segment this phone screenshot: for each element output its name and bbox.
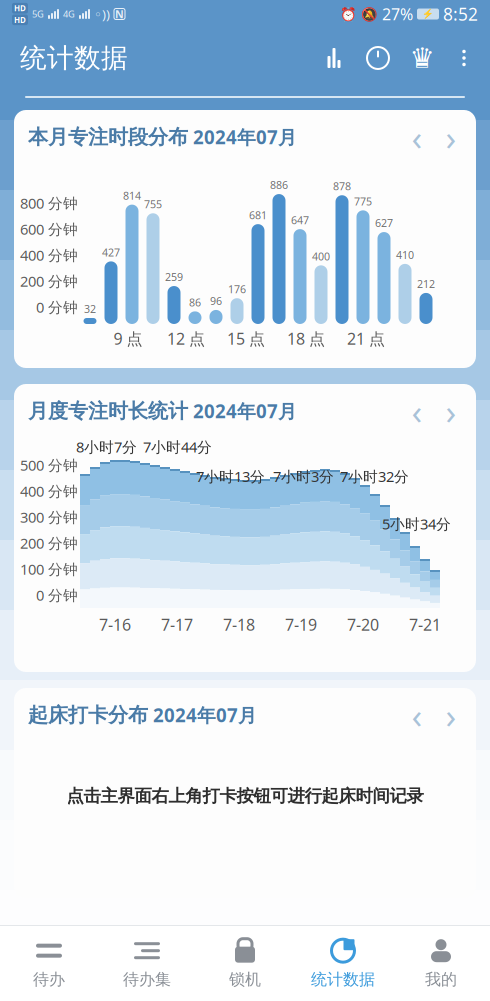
- staticText: 4G: [63, 8, 75, 20]
- staticText: 8:52: [443, 2, 478, 25]
- staticText: 5G: [32, 8, 44, 20]
- staticText: 2024年07月: [188, 399, 297, 423]
- staticText: 647: [291, 213, 309, 227]
- staticText: 600 分钟: [20, 219, 78, 239]
- staticText: 814: [123, 188, 141, 203]
- staticText: ♛: [409, 42, 434, 74]
- button[interactable]: 锁机: [196, 932, 294, 994]
- staticText: 8小时7分: [76, 437, 137, 456]
- staticText: 7小时13分: [196, 466, 265, 486]
- button[interactable]: 我的: [392, 932, 490, 994]
- staticText: HD: [14, 14, 26, 25]
- staticText: 2024年07月: [148, 703, 257, 727]
- staticText: 点击主界面右上角打卡按钮可进行起床时间记录: [66, 785, 423, 807]
- staticText: 待办集: [123, 970, 171, 989]
- button[interactable]: 统计数据: [294, 932, 392, 994]
- button[interactable]: 下一月: [434, 122, 468, 152]
- staticText: 775: [354, 194, 372, 208]
- button[interactable]: 上一月: [400, 396, 434, 426]
- staticText: ‹: [411, 114, 422, 160]
- button[interactable]: 上一月: [400, 122, 434, 152]
- staticText: 176: [228, 282, 246, 296]
- staticText: 7-20: [347, 614, 379, 635]
- staticText: 27%: [382, 3, 413, 25]
- staticText: 7小时3分: [273, 466, 334, 486]
- staticText: 2024年07月: [188, 125, 297, 149]
- button[interactable]: 待办: [0, 932, 98, 994]
- staticText: 21 点: [347, 328, 385, 349]
- staticText: ⚡: [422, 9, 434, 19]
- staticText: 86: [189, 295, 201, 309]
- staticText: 18 点: [287, 328, 325, 349]
- staticText: 9 点: [113, 328, 142, 349]
- staticText: 410: [396, 248, 414, 262]
- button[interactable]: 更多: [444, 36, 484, 80]
- button[interactable]: 时间记录: [356, 36, 400, 80]
- staticText: 200 分钟: [20, 533, 78, 553]
- staticText: ‹: [411, 388, 422, 434]
- staticText: 我的: [425, 970, 457, 989]
- button[interactable]: 图表: [312, 36, 356, 80]
- button[interactable]: 待办集: [98, 932, 196, 994]
- staticText: 15 点: [227, 328, 265, 349]
- button[interactable]: 下一月: [434, 700, 468, 730]
- staticText: 886: [270, 178, 288, 192]
- staticText: 统计数据: [311, 970, 375, 989]
- staticText: 统计数据: [20, 42, 128, 74]
- staticText: 878: [333, 179, 351, 193]
- staticText: 本月专注时段分布: [28, 125, 188, 149]
- staticText: 681: [249, 208, 267, 222]
- staticText: ⏰: [340, 6, 357, 22]
- staticText: 100 分钟: [20, 559, 78, 579]
- staticText: ‹: [411, 692, 422, 738]
- button[interactable]: 成就: [400, 36, 444, 80]
- staticText: 800 分钟: [20, 193, 78, 213]
- staticText: 400: [312, 249, 330, 263]
- staticText: 627: [375, 216, 393, 230]
- staticText: ›: [445, 388, 456, 434]
- staticText: 0 分钟: [36, 585, 78, 605]
- staticText: 400 分钟: [20, 481, 78, 501]
- staticText: ›: [445, 692, 456, 738]
- button[interactable]: 上一月: [400, 700, 434, 730]
- staticText: HD: [14, 3, 26, 13]
- staticText: 起床打卡分布: [28, 703, 148, 727]
- staticText: 0 分钟: [36, 297, 78, 317]
- staticText: 96: [210, 294, 222, 308]
- staticText: 7-18: [223, 614, 255, 635]
- staticText: 待办: [33, 970, 65, 989]
- staticText: 5小时34分: [382, 514, 451, 533]
- staticText: 7小时32分: [340, 466, 409, 486]
- staticText: 32: [84, 302, 96, 316]
- staticText: 锁机: [229, 970, 261, 989]
- staticText: 427: [102, 245, 120, 259]
- staticText: 7-21: [409, 614, 441, 635]
- staticText: 400 分钟: [20, 245, 78, 265]
- staticText: 7-17: [161, 614, 193, 635]
- staticText: N: [115, 7, 124, 21]
- staticText: 7-19: [285, 614, 317, 635]
- staticText: 212: [417, 277, 435, 291]
- staticText: 12 点: [167, 328, 205, 349]
- staticText: 7小时44分: [143, 437, 212, 456]
- staticText: ›: [445, 114, 456, 160]
- staticText: 500 分钟: [20, 455, 78, 475]
- staticText: 300 分钟: [20, 507, 78, 527]
- button[interactable]: 下一月: [434, 396, 468, 426]
- staticText: 259: [165, 270, 183, 284]
- staticText: 755: [144, 197, 162, 211]
- staticText: 200 分钟: [20, 271, 78, 291]
- staticText: 月度专注时长统计: [28, 399, 188, 423]
- staticText: 7-16: [99, 614, 131, 635]
- staticText: ◦)): [94, 5, 110, 23]
- staticText: 🔕: [361, 6, 378, 22]
